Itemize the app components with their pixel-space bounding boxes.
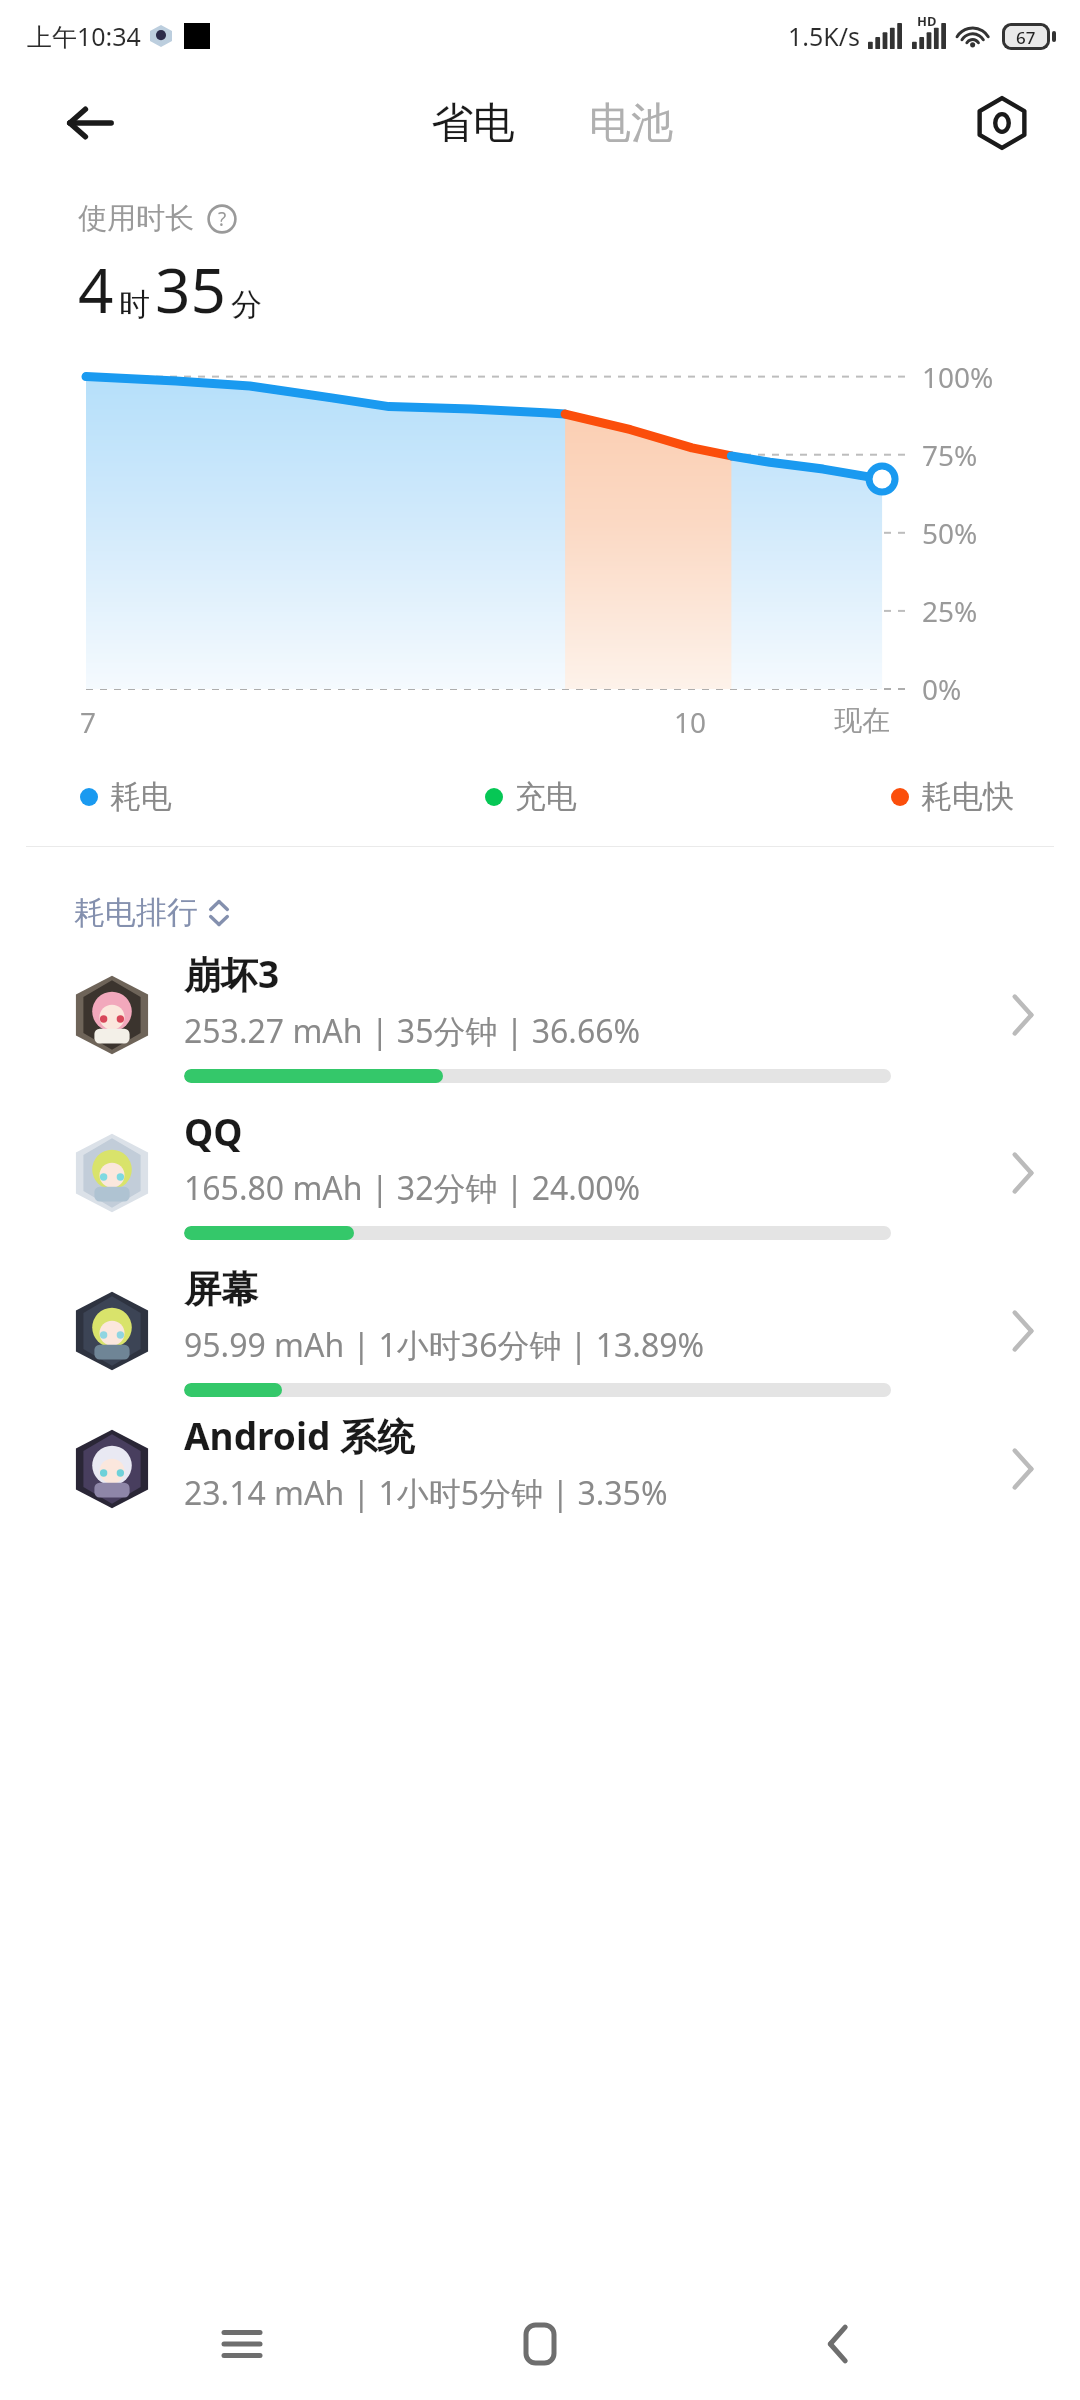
button[interactable]: 电池 — [577, 87, 685, 160]
button[interactable]: 耗电快 — [891, 777, 1014, 816]
button[interactable]: 耗电排行 — [74, 889, 242, 936]
staticText: 1.5K/s — [788, 19, 861, 53]
button[interactable]: Back — [782, 2288, 894, 2400]
button[interactable]: Back — [58, 91, 122, 155]
staticText: 上午10:34 — [27, 19, 141, 53]
button[interactable]: Home — [484, 2288, 596, 2400]
staticText: 95.99 mAh | 1小时36分钟 | 13.89% — [184, 1323, 705, 1367]
button[interactable]: 耗电 — [80, 777, 172, 816]
staticText: 253.27 mAh | 35分钟 | 36.66% — [184, 1009, 641, 1053]
staticText: 耗电排行 — [74, 893, 198, 932]
staticText: 耗电 — [110, 777, 172, 816]
button[interactable]: 屏幕 — [0, 1252, 1080, 1410]
staticText: ? — [218, 206, 227, 232]
button[interactable]: Android 系统 — [0, 1410, 1080, 1528]
button[interactable]: Help — [206, 203, 238, 235]
staticText: 耗电快 — [921, 777, 1014, 816]
staticText: 23.14 mAh | 1小时5分钟 | 3.35% — [184, 1471, 668, 1515]
staticText: 75% — [922, 436, 978, 474]
button[interactable]: 省电 — [419, 87, 527, 160]
staticText: 7 — [80, 703, 97, 741]
staticText: 0% — [922, 670, 962, 708]
staticText: 屏幕 — [184, 1266, 258, 1313]
staticText: 时 — [119, 285, 150, 324]
button[interactable]: Settings — [968, 89, 1036, 157]
staticText: 67 — [1016, 26, 1036, 47]
staticText: 使用时长 — [78, 200, 194, 237]
staticText: 165.80 mAh | 32分钟 | 24.00% — [184, 1166, 641, 1210]
button[interactable]: Recent apps — [186, 2288, 298, 2400]
button[interactable]: 充电 — [485, 777, 577, 816]
button[interactable]: 崩坏3 — [0, 936, 1080, 1094]
staticText: 50% — [922, 514, 978, 552]
staticText: 现在 — [834, 703, 890, 738]
staticText: 充电 — [515, 777, 577, 816]
staticText: 4 — [78, 247, 114, 331]
staticText: 电池 — [589, 97, 673, 150]
button[interactable]: QQ — [0, 1094, 1080, 1252]
staticText: 10 — [674, 703, 707, 741]
staticText: 崩坏3 — [184, 948, 280, 999]
staticText: HD — [917, 12, 937, 30]
staticText: Android 系统 — [184, 1410, 415, 1461]
staticText: 分 — [231, 285, 262, 324]
staticText: QQ — [184, 1106, 243, 1156]
staticText: 25% — [922, 592, 978, 630]
staticText: 35 — [155, 247, 226, 331]
staticText: 省电 — [431, 97, 515, 150]
staticText: 100% — [922, 358, 994, 396]
